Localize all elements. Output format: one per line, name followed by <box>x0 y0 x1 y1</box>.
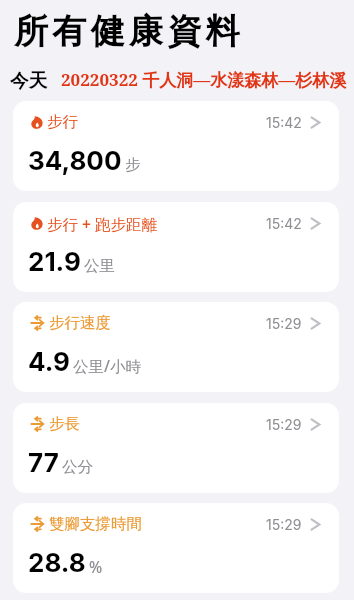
staticText: 77 <box>28 447 59 478</box>
staticText: 步行速度 <box>49 313 111 333</box>
staticText: 28.8 <box>28 547 86 578</box>
staticText: 步行 + 跑步距離 <box>47 213 157 234</box>
staticText: 15:29 <box>266 516 302 533</box>
staticText: 公分 <box>62 457 93 477</box>
staticText: 雙腳支撐時間 <box>49 514 142 534</box>
button[interactable]: 雙腳支撐時間 <box>13 503 339 593</box>
staticText: 公里/小時 <box>73 355 141 376</box>
staticText: 公里 <box>84 256 115 276</box>
staticText: 4.9 <box>28 346 70 377</box>
staticText: 15:42 <box>266 215 302 232</box>
staticText: 34,800 <box>28 145 122 176</box>
staticText: 今天 <box>10 69 47 92</box>
staticText: 15:29 <box>266 416 302 433</box>
button[interactable]: 步長 <box>13 403 339 493</box>
button[interactable]: 步行 + 跑步距離 <box>13 202 339 292</box>
staticText: 15:29 <box>266 315 302 332</box>
staticText: 15:42 <box>266 114 302 131</box>
button[interactable]: 步行速度 <box>13 302 339 392</box>
staticText: 步 <box>125 155 141 175</box>
staticText: 21.9 <box>28 246 81 277</box>
staticText: 步行 <box>47 112 78 132</box>
staticText: 所有健康資料 <box>14 10 244 53</box>
button[interactable]: 步行 <box>13 101 339 191</box>
staticText: 步長 <box>49 414 80 434</box>
staticText: % <box>89 556 103 577</box>
staticText: 20220322 千人洞—水漾森林—杉林溪 <box>61 68 347 91</box>
